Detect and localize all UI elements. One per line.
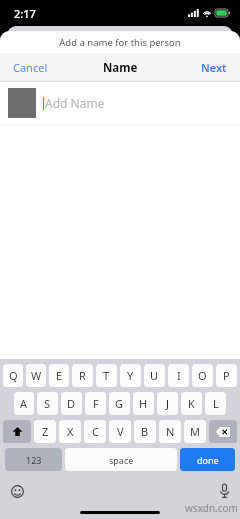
button[interactable]: done — [180, 448, 235, 471]
button[interactable]: Emoji — [11, 485, 24, 498]
button[interactable]: G — [109, 392, 130, 415]
staticText: done — [197, 454, 219, 466]
button[interactable]: O — [192, 364, 213, 387]
staticText: A — [20, 396, 28, 411]
staticText: Cancel — [13, 60, 48, 75]
button[interactable]: B — [134, 420, 156, 443]
button[interactable]: C — [84, 420, 106, 443]
button[interactable]: W — [26, 364, 46, 387]
staticText: D — [67, 396, 76, 411]
staticText: space — [109, 454, 134, 466]
button[interactable]: J — [157, 392, 178, 415]
staticText: P — [223, 368, 230, 383]
staticText: U — [150, 368, 159, 383]
staticText: E — [56, 368, 63, 383]
button[interactable]: 123 — [5, 448, 62, 471]
button[interactable]: Z — [34, 420, 56, 443]
button[interactable]: Q — [3, 364, 23, 387]
button[interactable]: H — [133, 392, 154, 415]
button[interactable]: L — [205, 392, 226, 415]
button[interactable]: Backspace — [209, 420, 237, 443]
staticText: I — [177, 368, 181, 383]
button[interactable]: Add Name — [0, 82, 240, 124]
staticText: Y — [127, 368, 134, 383]
button[interactable]: Y — [120, 364, 141, 387]
staticText: O — [198, 368, 207, 383]
button[interactable]: I — [168, 364, 189, 387]
staticText: Q — [9, 368, 18, 383]
staticText: M — [190, 424, 200, 439]
button[interactable]: X — [59, 420, 81, 443]
staticText: W — [31, 368, 42, 383]
button[interactable]: K — [181, 392, 202, 415]
staticText: F — [93, 396, 99, 411]
staticText: H — [139, 396, 148, 411]
button[interactable]: Shift — [3, 420, 31, 443]
staticText: X — [67, 424, 74, 439]
staticText: V — [117, 424, 124, 439]
button[interactable]: Dictation — [220, 484, 229, 498]
staticText: T — [103, 368, 110, 383]
staticText: J — [166, 396, 170, 411]
staticText: 123 — [26, 454, 42, 466]
staticText: 2:17 — [14, 6, 36, 21]
staticText: Z — [42, 424, 49, 439]
staticText: Add Name — [45, 95, 105, 111]
button[interactable]: F — [85, 392, 106, 415]
button[interactable]: V — [109, 420, 131, 443]
staticText: K — [188, 396, 195, 411]
staticText: Add a name for this person — [59, 36, 181, 49]
button[interactable]: R — [72, 364, 93, 387]
staticText: R — [79, 368, 86, 383]
staticText: C — [92, 424, 99, 439]
button[interactable]: S — [37, 392, 58, 415]
button[interactable]: T — [96, 364, 117, 387]
staticText: wsxdn.com — [185, 501, 238, 515]
button[interactable]: D — [61, 392, 82, 415]
staticText: Next — [201, 60, 227, 75]
button[interactable]: space — [65, 448, 177, 471]
button[interactable]: M — [184, 420, 206, 443]
button[interactable]: P — [216, 364, 237, 387]
staticText: N — [166, 424, 175, 439]
button[interactable]: E — [49, 364, 69, 387]
button[interactable]: A — [14, 392, 34, 415]
button[interactable]: U — [144, 364, 165, 387]
staticText: Name — [103, 60, 138, 76]
button[interactable]: Next — [188, 54, 240, 81]
staticText: S — [44, 396, 51, 411]
button[interactable]: Cancel — [0, 54, 61, 81]
staticText: B — [141, 424, 149, 439]
button[interactable]: N — [159, 420, 181, 443]
staticText: L — [213, 396, 219, 411]
staticText: G — [115, 396, 124, 411]
